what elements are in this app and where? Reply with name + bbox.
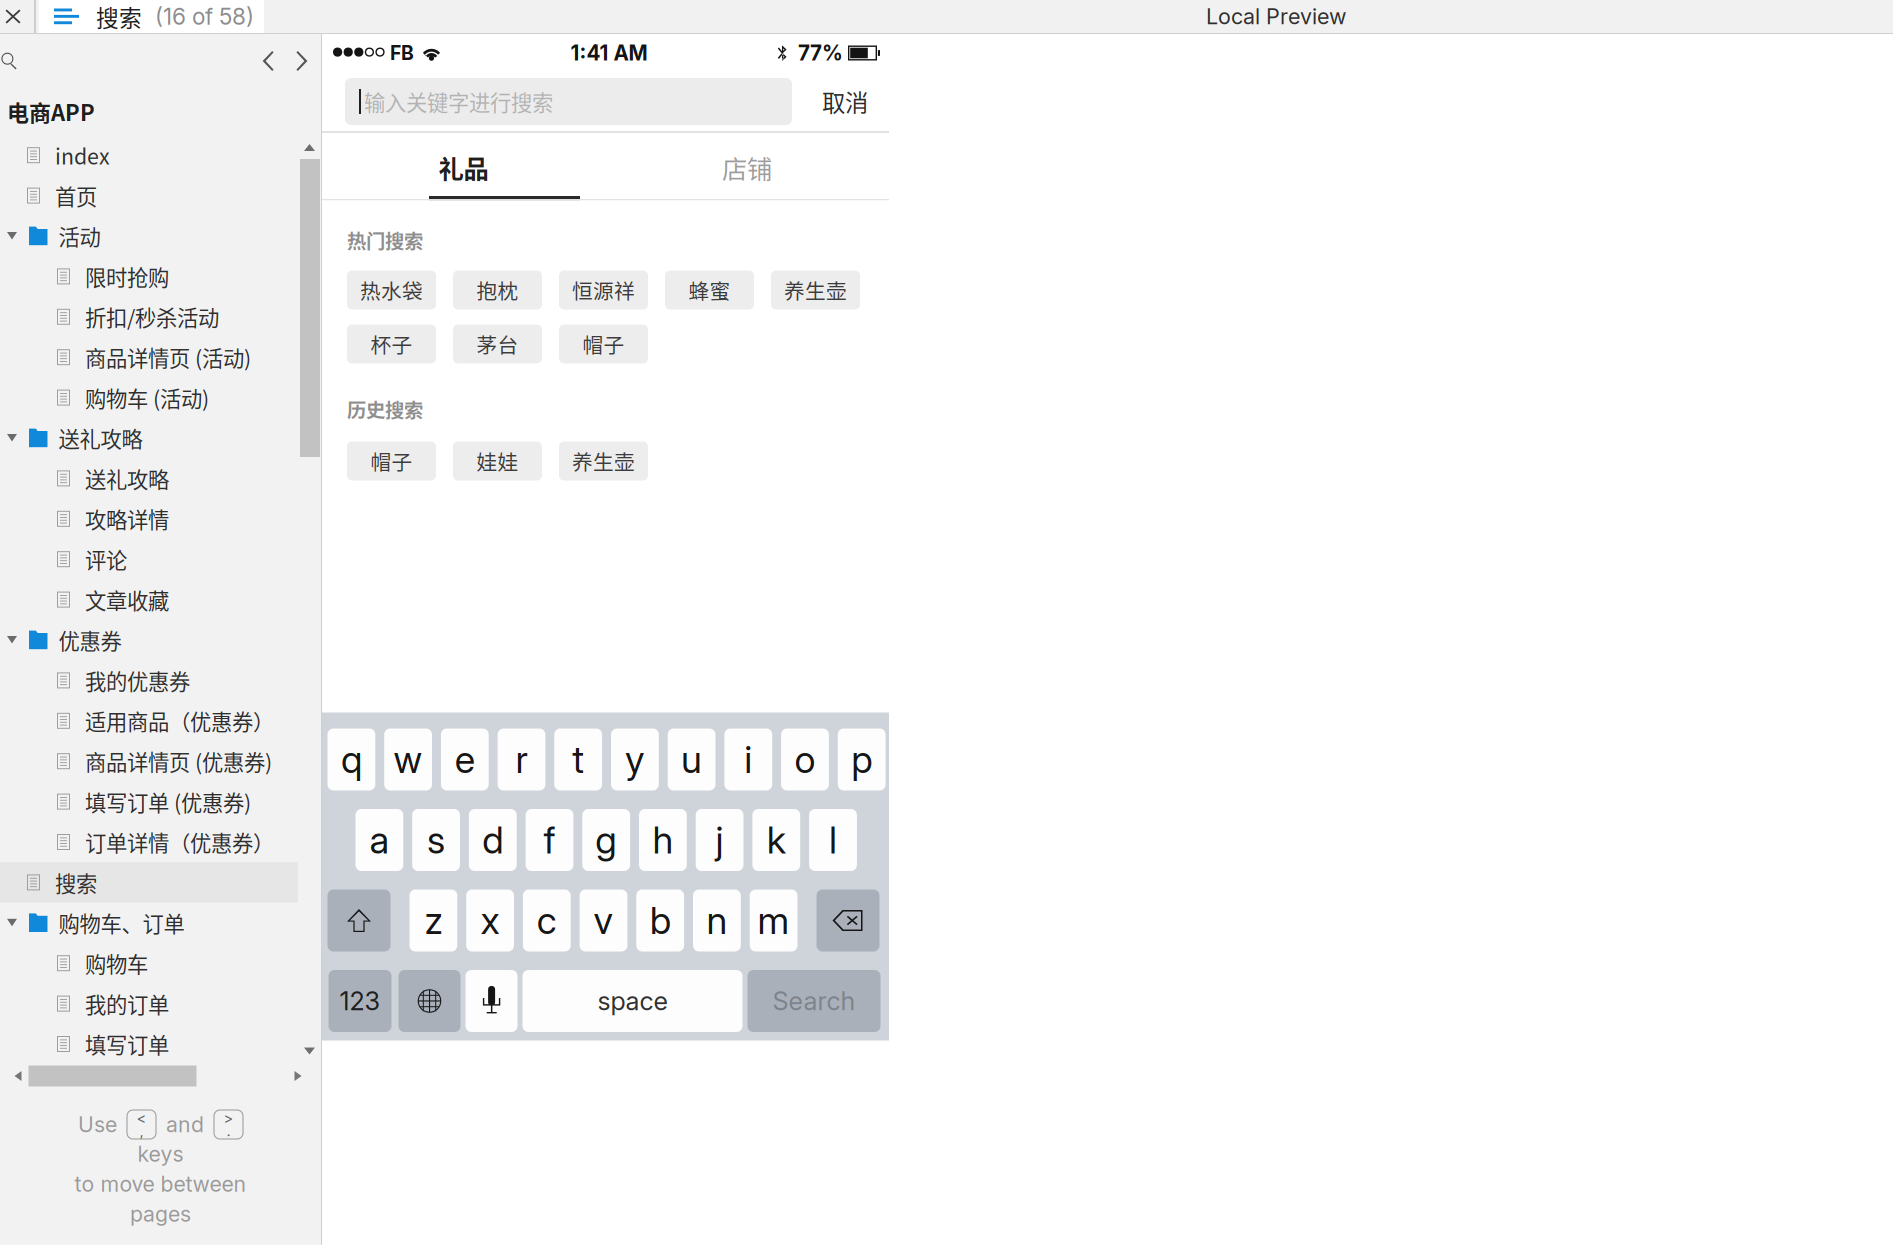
staticText: 送礼攻略	[58, 423, 142, 453]
button[interactable]: 购物车 (活动)	[0, 377, 298, 418]
staticText: Use	[78, 1112, 117, 1137]
button[interactable]: i	[724, 728, 772, 790]
button[interactable]: 我的订单	[0, 983, 298, 1024]
staticText: k	[767, 817, 786, 863]
button[interactable]: Shift	[327, 889, 390, 951]
button[interactable]: 购物车	[0, 943, 298, 983]
button[interactable]: 商品详情页 (活动)	[0, 337, 298, 377]
button[interactable]: c	[523, 889, 571, 951]
button[interactable]: 订单详情（优惠券）	[0, 822, 298, 862]
button[interactable]: a	[355, 809, 403, 871]
staticText: q	[341, 737, 362, 782]
button[interactable]: 礼品	[322, 139, 605, 196]
staticText: r	[515, 737, 527, 782]
button[interactable]: h	[639, 809, 687, 871]
button[interactable]: q	[327, 728, 375, 790]
button[interactable]: f	[526, 809, 573, 871]
button[interactable]: Next keyboard	[398, 970, 460, 1032]
button[interactable]: 蜂蜜	[665, 270, 754, 309]
button[interactable]: 攻略详情	[0, 499, 298, 539]
staticText: 活动	[58, 221, 100, 251]
button[interactable]: 热水袋	[347, 270, 436, 309]
button[interactable]: Previous page	[257, 44, 279, 78]
button[interactable]: 取消	[809, 78, 881, 125]
button[interactable]: 折扣/秒杀活动	[0, 297, 298, 337]
button[interactable]: e	[441, 728, 489, 790]
button[interactable]: r	[498, 728, 545, 790]
button[interactable]: Next page	[291, 44, 313, 78]
button[interactable]: Search	[747, 970, 880, 1032]
button[interactable]: v	[580, 889, 627, 951]
button[interactable]: 搜索	[0, 862, 298, 903]
staticText: p	[851, 737, 872, 782]
button[interactable]: 评论	[0, 539, 298, 579]
button[interactable]: 购物车、订单	[0, 903, 298, 943]
staticText: 热门搜索	[347, 226, 423, 254]
button[interactable]: t	[554, 728, 602, 790]
button[interactable]: 填写订单 (优惠券)	[0, 781, 298, 822]
staticText: 订单详情（优惠券）	[85, 827, 274, 857]
staticText: 限时抢购	[85, 261, 169, 292]
button[interactable]: 娃娃	[453, 441, 542, 480]
button[interactable]: p	[838, 728, 886, 790]
button[interactable]: 填写订单	[0, 1024, 298, 1064]
button[interactable]: 送礼攻略	[0, 418, 298, 458]
button[interactable]: s	[412, 809, 460, 871]
button[interactable]: 店铺	[605, 139, 889, 196]
button[interactable]: 搜索	[39, 0, 264, 33]
button[interactable]: 抱枕	[453, 270, 542, 309]
staticText: 输入关键字进行搜索	[364, 86, 553, 117]
button[interactable]: b	[636, 889, 684, 951]
staticText: 首页	[55, 180, 97, 211]
button[interactable]: Close	[0, 0, 26, 33]
button[interactable]: w	[384, 728, 432, 790]
button[interactable]: x	[466, 889, 514, 951]
button[interactable]: 限时抢购	[0, 256, 298, 297]
button[interactable]: z	[409, 889, 457, 951]
staticText: 购物车	[85, 948, 148, 979]
button[interactable]: 123	[328, 970, 391, 1032]
button[interactable]: 文章收藏	[0, 579, 298, 620]
button[interactable]: space	[522, 970, 742, 1032]
button[interactable]: 帽子	[559, 324, 648, 363]
button[interactable]: l	[809, 809, 857, 871]
button[interactable]: 首页	[0, 175, 298, 216]
button[interactable]: Search pages	[0, 44, 30, 78]
staticText: h	[652, 817, 673, 863]
button[interactable]: d	[469, 809, 517, 871]
button[interactable]: 优惠券	[0, 620, 298, 660]
button[interactable]: y	[611, 728, 659, 790]
staticText: (16 of 58)	[155, 3, 254, 30]
button[interactable]: k	[752, 809, 800, 871]
button[interactable]: o	[781, 728, 829, 790]
button[interactable]: 杯子	[347, 324, 436, 363]
button[interactable]: j	[696, 809, 743, 871]
staticText: 商品详情页 (活动)	[85, 342, 251, 373]
staticText: ,	[139, 1122, 143, 1140]
button[interactable]: 茅台	[453, 324, 542, 363]
button[interactable]: 帽子	[347, 441, 436, 480]
button[interactable]: 商品详情页 (优惠券)	[0, 741, 298, 781]
staticText: keys	[137, 1141, 183, 1167]
staticText: 折扣/秒杀活动	[85, 301, 219, 332]
button[interactable]: 我的优惠券	[0, 660, 298, 701]
staticText: l	[829, 817, 837, 863]
button[interactable]: 养生壶	[559, 441, 648, 480]
button[interactable]: n	[693, 889, 741, 951]
staticText: >	[223, 1109, 233, 1127]
staticText: 电商APP	[7, 96, 95, 127]
button[interactable]: 适用商品（优惠券）	[0, 701, 298, 741]
button[interactable]: index	[0, 135, 298, 175]
button[interactable]: 养生壶	[771, 270, 860, 309]
button[interactable]: g	[582, 809, 630, 871]
staticText: 热水袋	[360, 275, 423, 305]
button[interactable]: 送礼攻略	[0, 458, 298, 499]
button[interactable]: 恒源祥	[559, 270, 648, 309]
button[interactable]: m	[750, 889, 797, 951]
button[interactable]: Dictation	[465, 970, 517, 1032]
button[interactable]: u	[668, 728, 715, 790]
staticText: m	[758, 898, 790, 943]
button[interactable]: 活动	[0, 216, 298, 256]
staticText: v	[593, 898, 613, 943]
button[interactable]: Delete	[816, 889, 879, 951]
